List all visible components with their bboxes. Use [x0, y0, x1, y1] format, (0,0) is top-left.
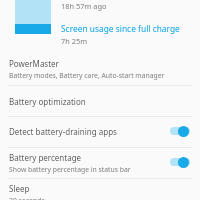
button[interactable]: Battery percentage	[170, 156, 192, 170]
staticText: Detect battery-draining apps	[9, 126, 117, 137]
staticText: Battery optimization	[9, 96, 86, 107]
button[interactable]: Battery optimization	[0, 85, 200, 117]
staticText: Sleep	[9, 183, 30, 194]
button[interactable]: Sleep	[0, 178, 200, 200]
staticText: PowerMaster	[9, 58, 59, 69]
staticText: 30 seconds	[9, 196, 45, 200]
button[interactable]: Detect battery-draining apps	[0, 116, 200, 147]
button[interactable]: PowerMaster	[0, 53, 200, 85]
staticText: Show battery percentage in status bar	[9, 165, 131, 174]
staticText: Screen usage since full charge	[61, 23, 180, 34]
staticText: Battery percentage	[9, 152, 82, 163]
staticText: Battery modes, Battery care, Auto-start …	[9, 71, 165, 80]
button[interactable]: Battery percentage	[0, 147, 200, 178]
button[interactable]: Detect battery-draining apps	[170, 125, 192, 139]
staticText: 7h 25m	[61, 36, 88, 46]
staticText: 18h 57m ago	[61, 1, 107, 11]
